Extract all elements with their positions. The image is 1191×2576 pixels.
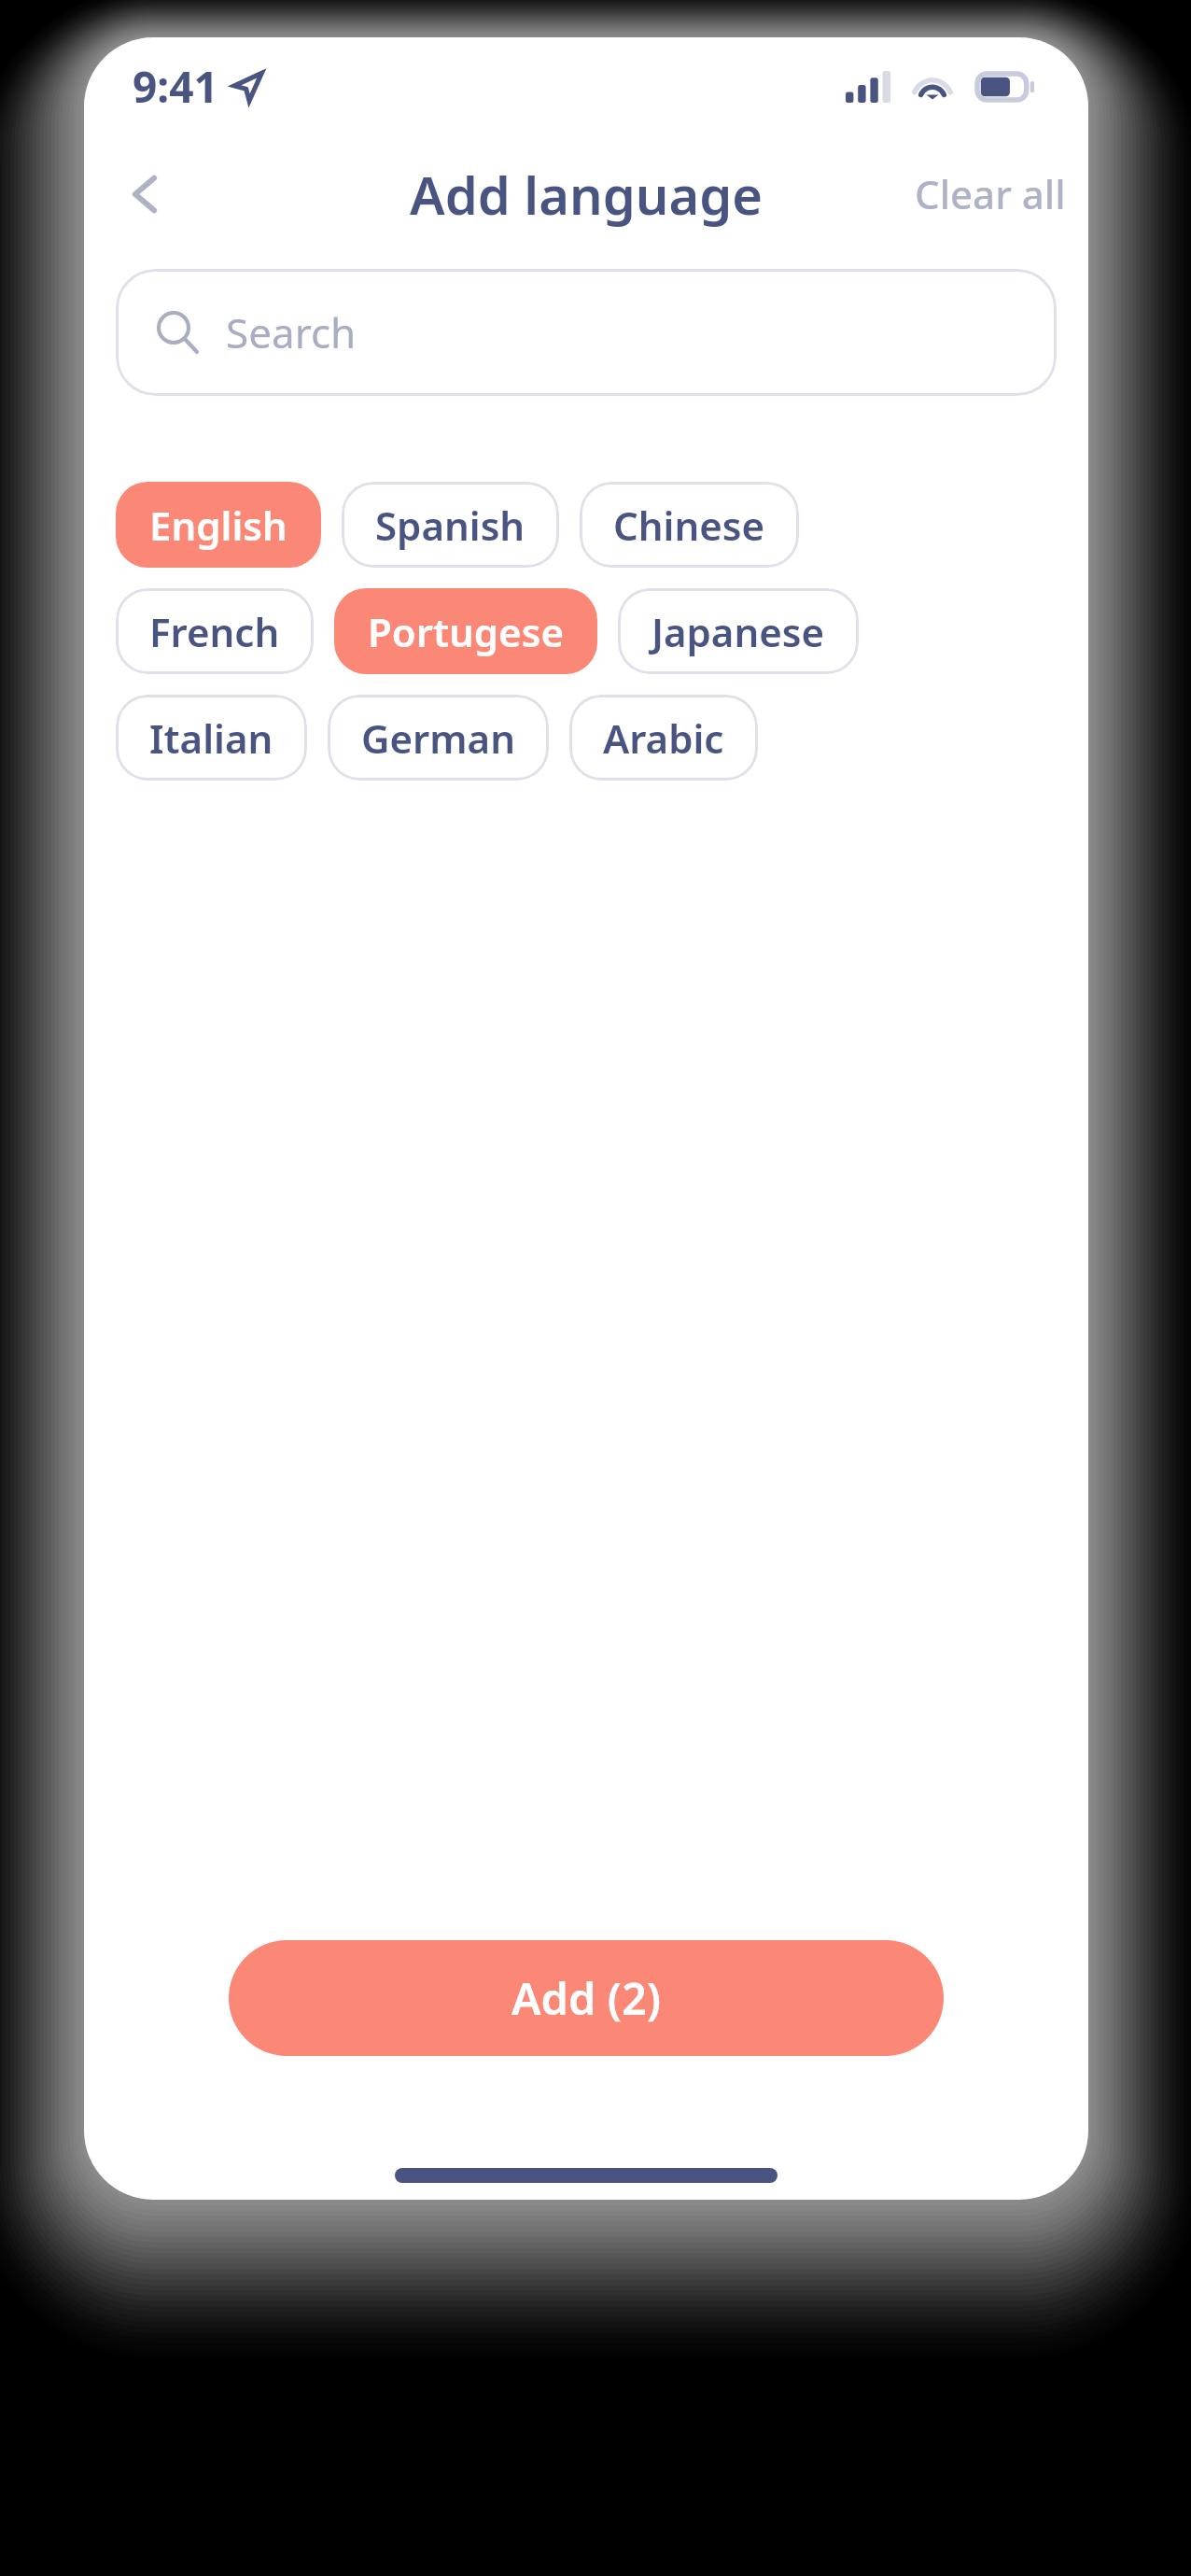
staticText: Search (226, 304, 357, 360)
button[interactable]: Back (103, 152, 187, 236)
staticText: English (149, 499, 287, 552)
staticText: Add language (410, 159, 763, 230)
button[interactable]: English (116, 482, 321, 568)
staticText: Japanese (652, 605, 825, 658)
staticText: Italian (149, 711, 273, 765)
button[interactable]: French (116, 588, 314, 674)
button[interactable]: Chinese (580, 482, 799, 568)
staticText: Chinese (613, 499, 765, 552)
staticText: German (361, 711, 515, 765)
button[interactable]: Add (2) (229, 1940, 944, 2056)
staticText: Arabic (603, 711, 724, 765)
staticText: Clear all (915, 167, 1066, 220)
staticText: Spanish (375, 499, 525, 552)
button[interactable]: Spanish (342, 482, 559, 568)
staticText: French (149, 605, 280, 658)
staticText: Portugese (368, 605, 564, 658)
button[interactable]: Clear all (892, 148, 1088, 239)
button[interactable]: Portugese (334, 588, 597, 674)
button[interactable]: German (328, 695, 549, 781)
other: Search (155, 309, 202, 356)
button[interactable]: Arabic (569, 695, 758, 781)
button[interactable]: Japanese (618, 588, 859, 674)
button[interactable]: Italian (116, 695, 307, 781)
button[interactable]: Search (116, 269, 1057, 396)
staticText: Add (2) (511, 1968, 661, 2028)
staticText: 9:41 (133, 57, 218, 116)
